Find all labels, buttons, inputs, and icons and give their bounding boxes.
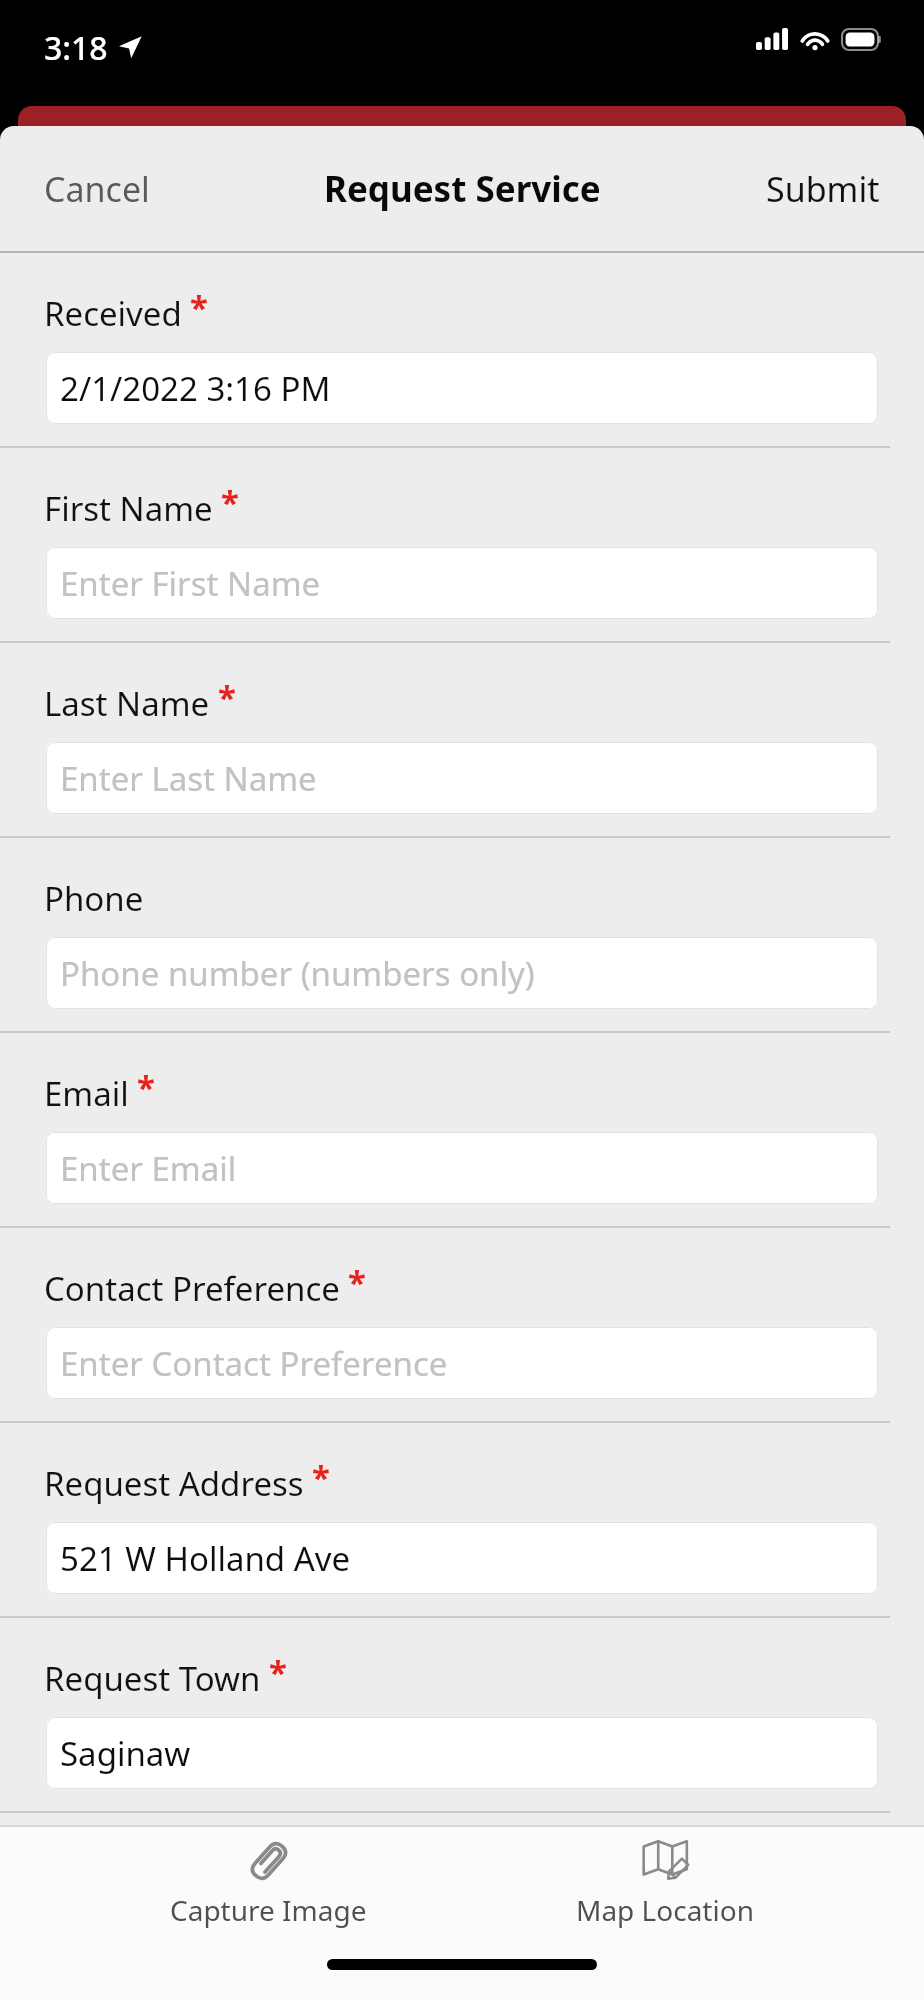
button[interactable]: Phone [0,838,924,1033]
staticText: Request Town [44,1656,261,1701]
staticText: Phone number (numbers only) [60,951,535,996]
staticText: * [348,1260,366,1305]
button[interactable]: Submit [746,152,924,226]
staticText: Phone [44,876,144,921]
staticText: Capture Image [170,1891,367,1929]
other: Capture Image [243,1835,295,1887]
staticText: Map Location [576,1891,754,1929]
staticText: Request Service [324,165,601,213]
button[interactable]: Request Address [0,1423,924,1618]
staticText: 521 W Holland Ave [60,1536,351,1581]
staticText: Contact Preference [44,1266,340,1311]
staticText: * [221,480,239,525]
staticText: Submit [766,166,880,212]
staticText: * [269,1650,287,1695]
staticText: Received [44,291,182,336]
staticText: * [190,285,208,330]
button[interactable]: Cancel [0,152,170,226]
button[interactable]: First Name [0,448,924,643]
staticText: First Name [44,486,213,531]
staticText: * [137,1065,155,1110]
staticText: * [218,675,236,720]
staticText: Enter Last Name [60,756,317,801]
staticText: 3:18 [44,26,108,70]
staticText: 2/1/2022 3:16 PM [60,366,331,411]
staticText: Enter Email [60,1146,237,1191]
button[interactable]: Map Location [536,1827,794,1940]
staticText: Last Name [44,681,210,726]
button[interactable]: Email [0,1033,924,1228]
staticText: Email [44,1071,129,1116]
staticText: Enter First Name [60,561,321,606]
staticText: Saginaw [60,1731,191,1776]
button[interactable]: Request Town [0,1618,924,1813]
staticText: Enter Contact Preference [60,1341,448,1386]
staticText: Request Address [44,1461,304,1506]
button[interactable]: Received [0,253,924,448]
button[interactable]: Last Name [0,643,924,838]
staticText: * [312,1455,330,1500]
staticText: Cancel [44,166,150,212]
other: Map Location [639,1835,691,1887]
button[interactable]: Capture Image [130,1827,407,1940]
button[interactable]: Contact Preference [0,1228,924,1423]
